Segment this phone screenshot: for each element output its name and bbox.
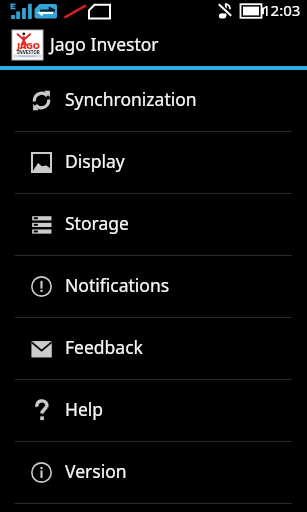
staticText: Help (65, 397, 104, 421)
staticText: INVESTOR (17, 49, 40, 55)
staticText: Notifications (65, 273, 170, 297)
button[interactable]: Version (0, 442, 307, 503)
button[interactable]: JAGO (0, 22, 307, 66)
staticText: Jago Investor (50, 32, 159, 56)
staticText: Synchronization (65, 87, 197, 111)
staticText: 12:03 (262, 0, 301, 20)
button[interactable]: Notifications (0, 256, 307, 317)
button[interactable]: Synchronization (0, 70, 307, 131)
button[interactable]: Display (0, 132, 307, 193)
staticText: Feedback (65, 335, 143, 359)
staticText: Display (65, 149, 125, 173)
staticText: Version (65, 459, 127, 483)
staticText: Storage (65, 211, 129, 235)
button[interactable]: Storage (0, 194, 307, 255)
button[interactable]: Help (0, 380, 307, 441)
staticText: JAGO (17, 39, 40, 52)
button[interactable]: Feedback (0, 318, 307, 379)
